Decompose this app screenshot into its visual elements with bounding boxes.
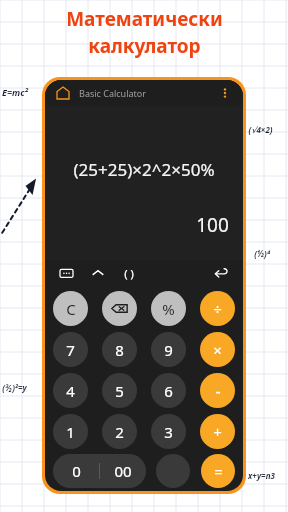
- staticText: (√4×2): [248, 124, 273, 135]
- staticText: %: [162, 299, 175, 319]
- staticText: Basic Calculator: [79, 87, 146, 99]
- staticText: 4: [66, 381, 75, 401]
- button[interactable]: C: [53, 291, 88, 326]
- button[interactable]: 8: [102, 332, 137, 367]
- staticText: 3: [164, 422, 173, 442]
- button[interactable]: 3: [151, 414, 186, 449]
- staticText: 9: [164, 340, 173, 360]
- staticText: C: [66, 299, 76, 319]
- button[interactable]: Parentheses: [119, 263, 139, 283]
- staticText: 5: [115, 381, 124, 401]
- staticText: -: [215, 380, 221, 402]
- button[interactable]: 2: [102, 414, 137, 449]
- button[interactable]: =: [201, 454, 235, 488]
- staticText: +: [213, 422, 222, 442]
- staticText: x+y=n3: [248, 470, 275, 481]
- staticText: калкулатор: [88, 33, 201, 59]
- button[interactable]: 0: [53, 454, 99, 488]
- staticText: 7: [66, 340, 75, 360]
- staticText: 100: [196, 212, 229, 238]
- staticText: Математически: [66, 6, 223, 32]
- button[interactable]: +: [200, 414, 235, 449]
- staticText: (25+25)×2^2×50%: [73, 158, 215, 181]
- button[interactable]: More options: [217, 85, 233, 101]
- staticText: ÷: [213, 299, 222, 319]
- staticText: (½)⁴: [254, 248, 270, 259]
- button[interactable]: 9: [151, 332, 186, 367]
- staticText: 0: [72, 461, 81, 481]
- button[interactable]: ÷: [200, 291, 235, 326]
- button[interactable]: 1: [53, 414, 88, 449]
- staticText: 1: [66, 422, 75, 442]
- staticText: 6: [164, 381, 173, 401]
- button[interactable]: 6: [151, 373, 186, 408]
- button[interactable]: Power: [89, 264, 107, 282]
- button[interactable]: 4: [53, 373, 88, 408]
- staticText: (³⁄₂)²=y: [2, 382, 27, 393]
- button[interactable]: 5: [102, 373, 137, 408]
- button[interactable]: Decimal point: [156, 454, 190, 488]
- staticText: ×: [213, 340, 222, 360]
- button[interactable]: Home: [55, 85, 71, 101]
- staticText: 8: [115, 340, 124, 360]
- button[interactable]: Backspace: [102, 291, 137, 326]
- staticText: ( ): [124, 266, 134, 281]
- button[interactable]: Keypad: [57, 264, 75, 282]
- button[interactable]: %: [151, 291, 186, 326]
- staticText: E=mc²: [2, 86, 28, 98]
- staticText: 00: [114, 461, 132, 481]
- button[interactable]: Undo: [211, 263, 231, 283]
- button[interactable]: 7: [53, 332, 88, 367]
- button[interactable]: -: [200, 373, 235, 408]
- staticText: 2: [115, 422, 124, 442]
- staticText: =: [214, 461, 223, 481]
- button[interactable]: 00: [100, 454, 146, 488]
- button[interactable]: ×: [200, 332, 235, 367]
